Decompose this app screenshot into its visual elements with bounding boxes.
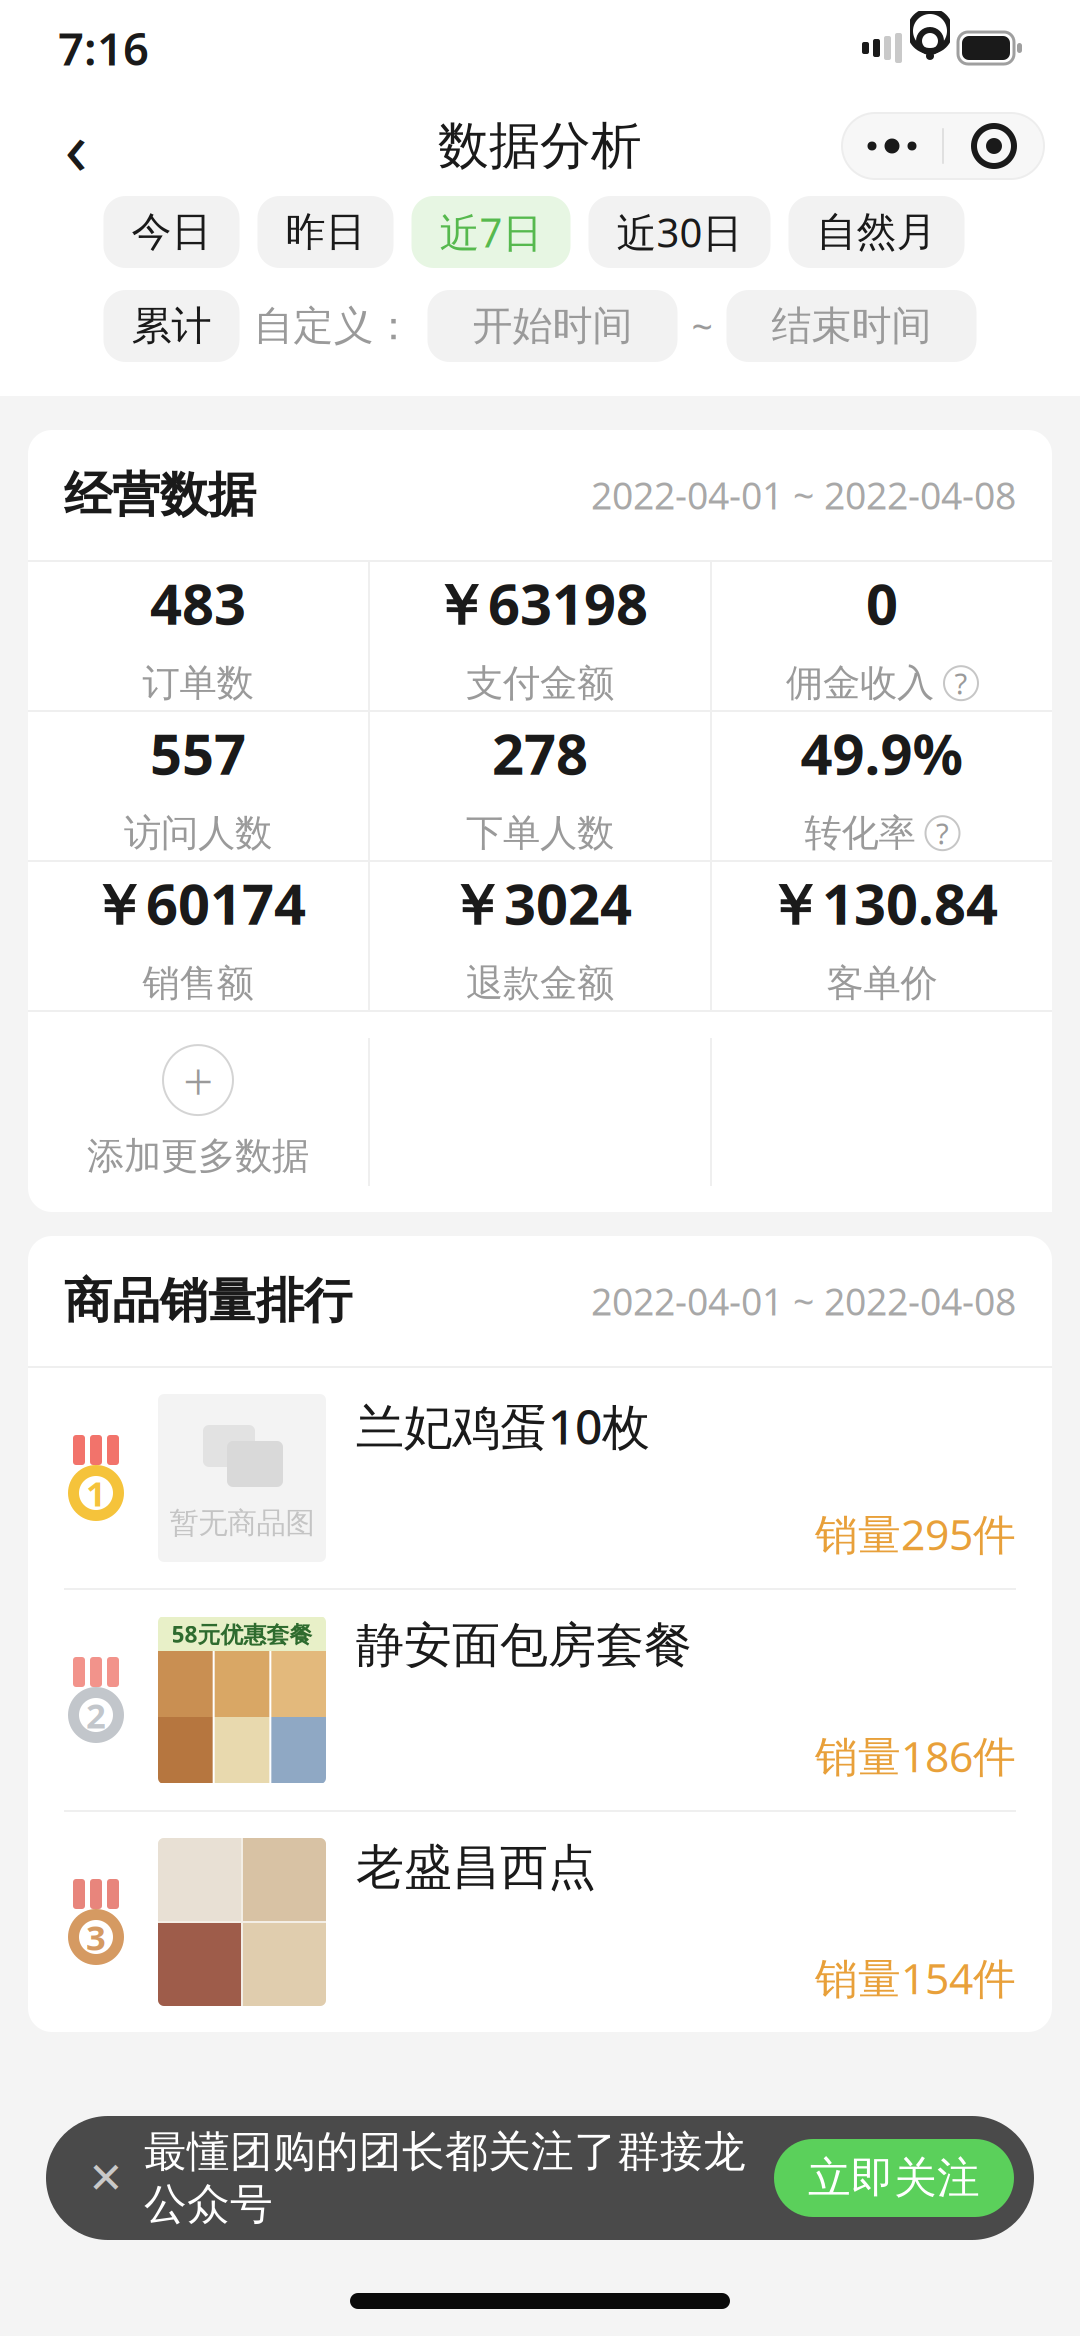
button[interactable]: 483: [28, 562, 368, 710]
staticText: 7:16: [58, 18, 149, 78]
staticText: 立即关注: [808, 2152, 980, 2204]
staticText: 累计: [131, 301, 211, 350]
staticText: 客单价: [826, 960, 937, 1006]
button[interactable]: 今日: [103, 196, 239, 268]
button[interactable]: ￥60174: [28, 862, 368, 1010]
button[interactable]: 49.9%: [712, 712, 1052, 860]
staticText: 兰妃鸡蛋10枚: [356, 1394, 650, 1458]
button[interactable]: +: [28, 1012, 368, 1212]
button[interactable]: 自然月: [788, 196, 964, 268]
staticText: 佣金收入: [786, 660, 934, 706]
staticText: 3: [86, 1914, 106, 1960]
staticText: 自然月: [816, 207, 936, 256]
staticText: 结束时间: [771, 301, 931, 350]
staticText: 0: [866, 566, 898, 640]
staticText: 退款金额: [466, 960, 614, 1006]
staticText: 销量154件: [815, 1949, 1016, 2006]
staticText: 最懂团购的团长都关注了群接龙公众号: [144, 2126, 746, 2230]
staticText: 483: [150, 566, 246, 640]
staticText: ?: [936, 814, 949, 853]
staticText: 2022-04-01 ~ 2022-04-08: [591, 1276, 1016, 1326]
button[interactable]: Back: [36, 106, 116, 186]
staticText: 静安面包房套餐: [356, 1616, 692, 1675]
staticText: ￥130.84: [766, 866, 998, 940]
button[interactable]: 278: [370, 712, 710, 860]
staticText: 销量186件: [815, 1727, 1016, 1784]
button[interactable]: 近7日: [411, 196, 570, 268]
staticText: ￥3024: [448, 866, 632, 940]
button[interactable]: More: [842, 113, 942, 179]
staticText: 订单数: [142, 660, 253, 706]
button[interactable]: ￥3024: [370, 862, 710, 1010]
staticText: 老盛昌西点: [356, 1838, 596, 1897]
staticText: 昨日: [285, 207, 365, 256]
button[interactable]: Close: [944, 113, 1044, 179]
button[interactable]: 累计: [103, 290, 239, 362]
staticText: 今日: [131, 207, 211, 256]
button[interactable]: 开始时间: [427, 290, 677, 362]
staticText: ~: [691, 301, 712, 351]
staticText: ￥63198: [432, 566, 648, 640]
staticText: ￥60174: [90, 866, 306, 940]
staticText: 下单人数: [466, 810, 614, 856]
staticText: 2022-04-01 ~ 2022-04-08: [591, 470, 1016, 520]
staticText: ?: [954, 664, 967, 703]
button[interactable]: 结束时间: [726, 290, 976, 362]
staticText: 近30日: [616, 205, 742, 258]
staticText: 自定义：: [253, 301, 413, 350]
staticText: 经营数据: [64, 465, 256, 524]
button[interactable]: Close banner: [76, 2148, 136, 2208]
staticText: ✕: [88, 2154, 124, 2202]
staticText: 近7日: [439, 205, 542, 258]
button[interactable]: 0: [712, 562, 1052, 710]
button[interactable]: 近30日: [588, 196, 770, 268]
staticText: 访问人数: [124, 810, 272, 856]
button[interactable]: 557: [28, 712, 368, 860]
button[interactable]: 1: [28, 1368, 1052, 1588]
staticText: 49.9%: [800, 716, 963, 790]
staticText: ‹: [64, 96, 87, 196]
button[interactable]: 2: [28, 1590, 1052, 1810]
staticText: 商品销量排行: [64, 1271, 352, 1330]
staticText: 销量295件: [815, 1505, 1016, 1562]
button[interactable]: ￥130.84: [712, 862, 1052, 1010]
staticText: 278: [492, 716, 588, 790]
staticText: 58元优惠套餐: [171, 1619, 312, 1649]
button[interactable]: 立即关注: [774, 2139, 1014, 2217]
staticText: 开始时间: [472, 301, 632, 350]
button[interactable]: 3: [28, 1812, 1052, 2032]
staticText: 数据分析: [438, 115, 642, 177]
staticText: 转化率: [804, 810, 915, 856]
staticText: 557: [150, 716, 246, 790]
staticText: 支付金额: [466, 660, 614, 706]
staticText: 1: [86, 1470, 106, 1516]
staticText: 销售额: [142, 960, 253, 1006]
staticText: 添加更多数据: [87, 1133, 309, 1179]
staticText: 暂无商品图: [169, 1505, 314, 1541]
button[interactable]: 昨日: [257, 196, 393, 268]
staticText: 2: [86, 1692, 106, 1738]
button[interactable]: ￥63198: [370, 562, 710, 710]
staticText: +: [183, 1045, 213, 1115]
